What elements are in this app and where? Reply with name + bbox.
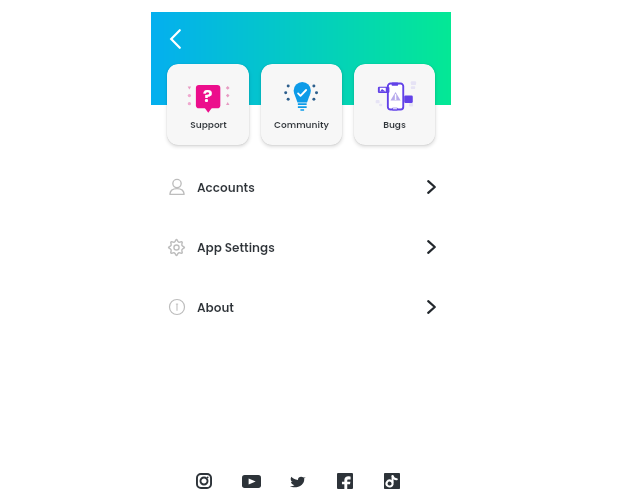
staticText: App Settings	[197, 239, 275, 256]
button[interactable]: Facebook	[330, 466, 360, 490]
staticText: Accounts	[197, 179, 255, 196]
button[interactable]: Accounts	[151, 157, 451, 217]
staticText: About	[197, 299, 234, 316]
button[interactable]: YouTube	[236, 466, 266, 490]
button[interactable]: Instagram	[189, 466, 219, 490]
staticText: Bugs	[383, 119, 406, 132]
button[interactable]: Bugs	[354, 64, 435, 145]
button[interactable]: Twitter	[283, 466, 313, 490]
staticText: ?	[203, 84, 213, 109]
button[interactable]: TikTok	[377, 466, 407, 490]
button[interactable]: About	[151, 277, 451, 337]
button[interactable]: ?	[167, 64, 249, 145]
staticText: Support	[190, 119, 227, 132]
button[interactable]: App Settings	[151, 217, 451, 277]
button[interactable]: Back	[159, 23, 191, 55]
button[interactable]: Community	[261, 64, 342, 145]
staticText: Community	[274, 119, 329, 132]
